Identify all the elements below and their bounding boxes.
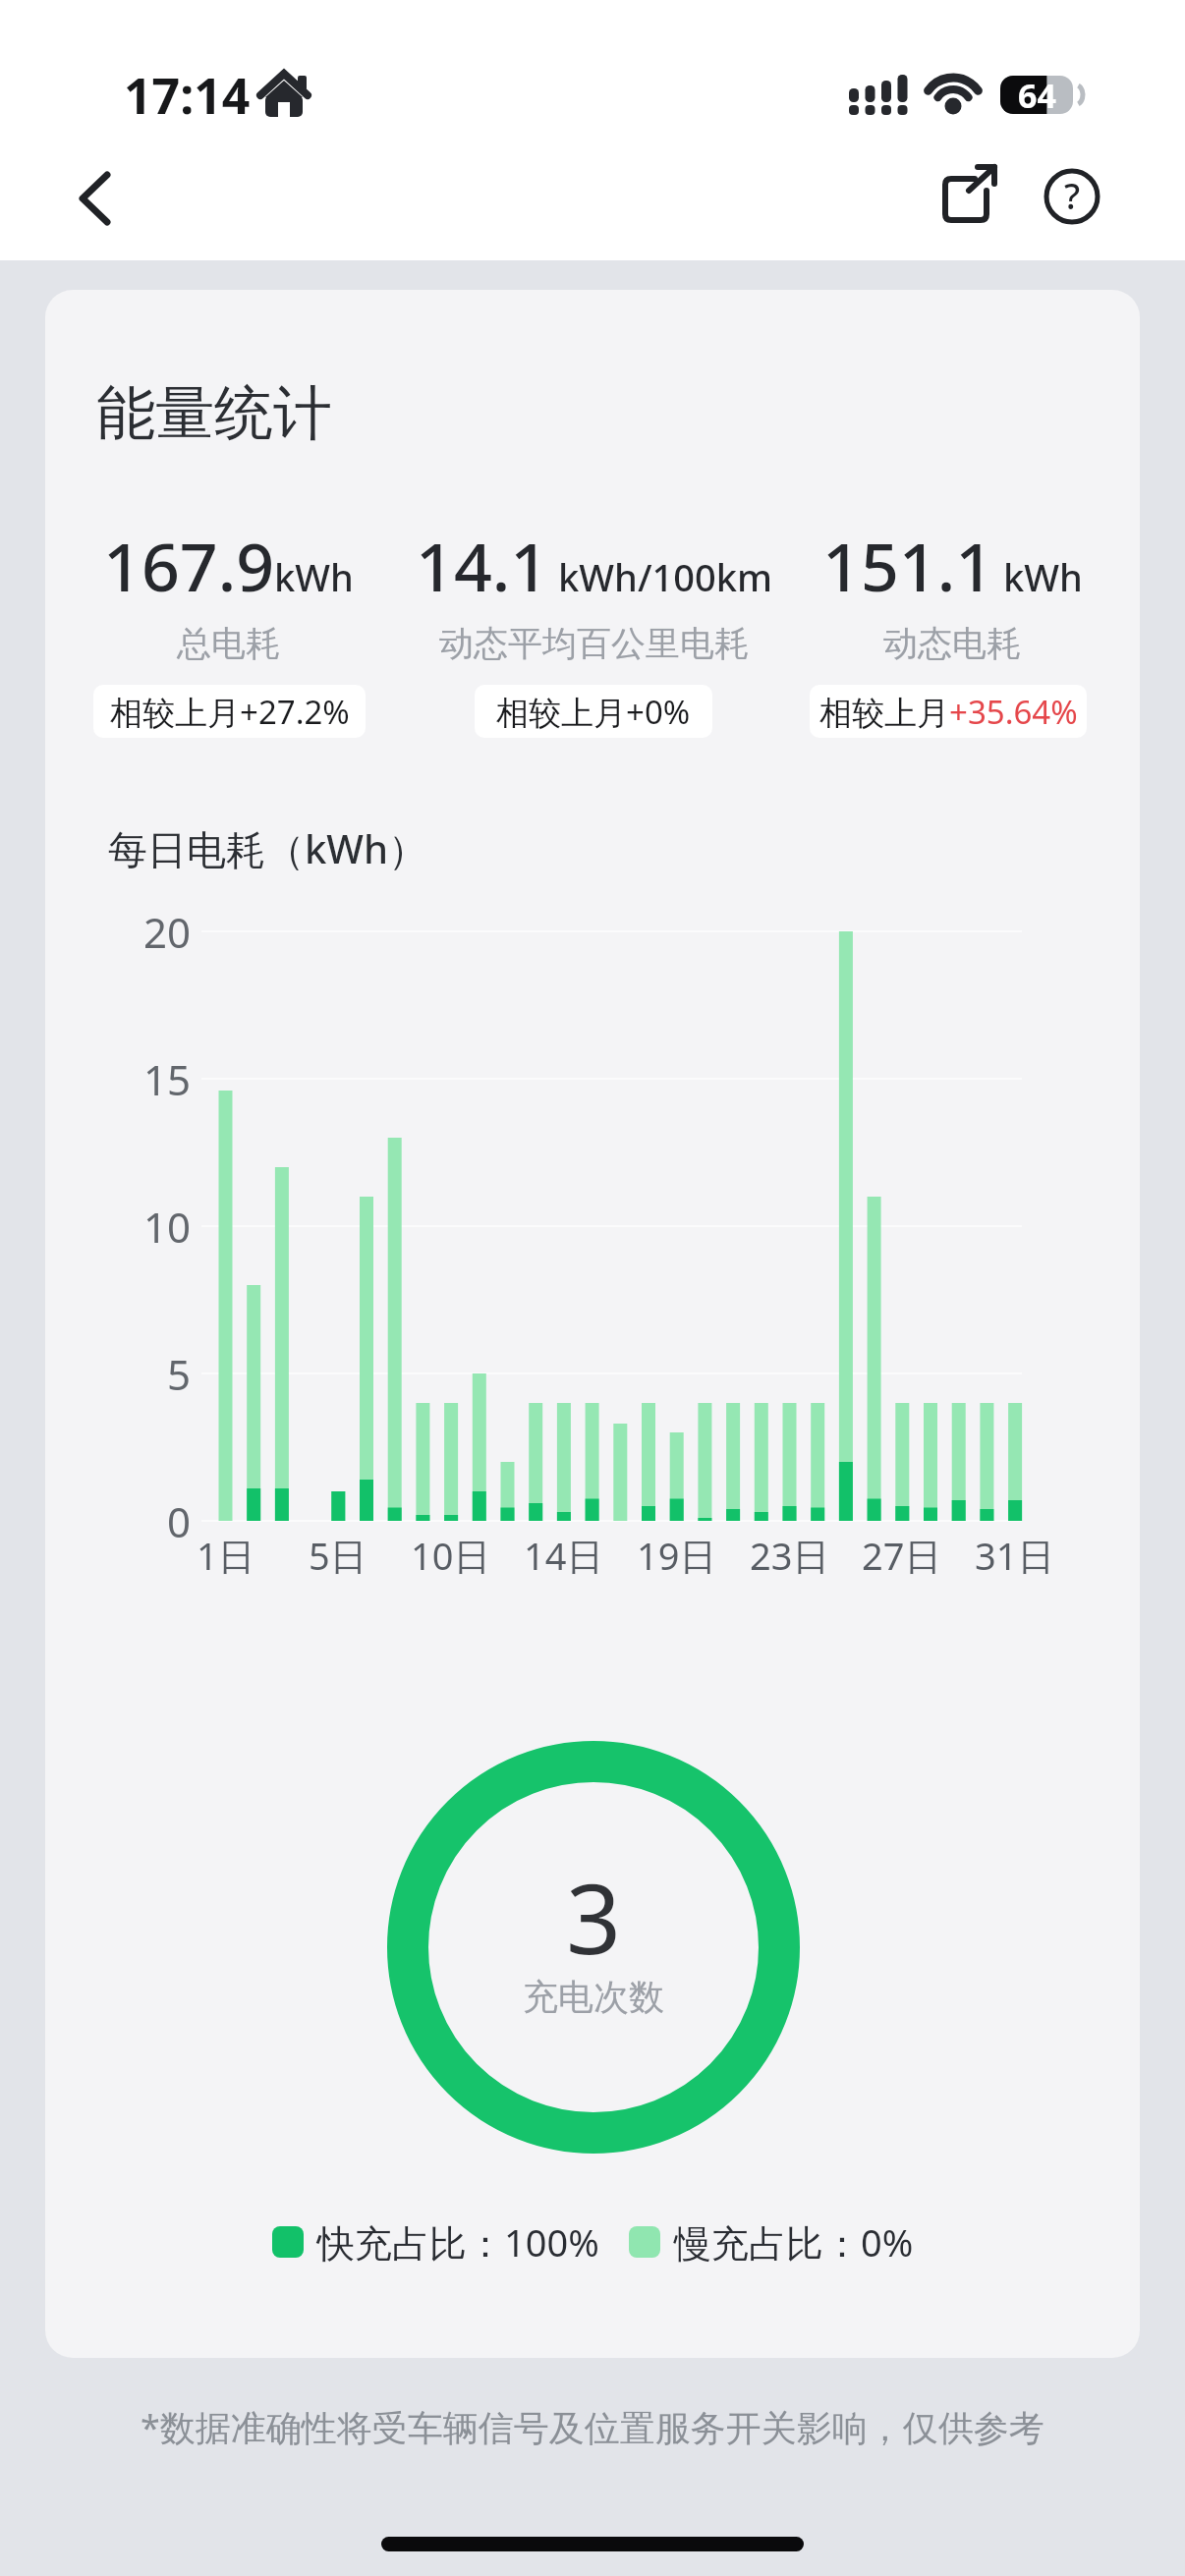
staticText: 每日电耗（kWh）: [108, 821, 428, 875]
staticText: 3: [566, 1851, 622, 1982]
staticText: *数据准确性将受车辆信号及位置服务开关影响，仅供参考: [141, 2403, 1044, 2451]
staticText: 5日: [309, 1530, 367, 1581]
staticText: 14日: [524, 1530, 604, 1581]
staticText: 19日: [637, 1530, 717, 1581]
staticText: 10: [143, 1199, 192, 1255]
staticText: 27日: [862, 1530, 942, 1581]
staticText: 20: [143, 904, 192, 960]
staticText: 10日: [411, 1530, 491, 1581]
staticText: 慢充占比：0%: [674, 2216, 914, 2268]
staticText: 23日: [750, 1530, 830, 1581]
staticText: 充电次数: [523, 1975, 664, 2019]
staticText: 15: [143, 1051, 192, 1107]
staticText: 31日: [975, 1530, 1055, 1581]
staticText: 1日: [197, 1530, 255, 1581]
staticText: 14.1 kWh/100km: [416, 520, 772, 611]
staticText: 动态电耗: [883, 622, 1021, 665]
staticText: 151.1 kWh: [822, 520, 1083, 611]
staticText: 能量统计: [96, 376, 332, 451]
button[interactable]: [59, 167, 122, 230]
button[interactable]: ?: [1041, 165, 1103, 228]
staticText: 相较上月+27.2%: [110, 690, 350, 734]
button[interactable]: [933, 161, 1008, 232]
staticText: ?: [1064, 172, 1081, 220]
staticText: 相较上月+35.64%: [819, 690, 1078, 734]
staticText: 167.9kWh: [103, 520, 354, 611]
staticText: 快充占比：100%: [317, 2216, 599, 2268]
staticText: 动态平均百公里电耗: [439, 622, 749, 665]
staticText: 17:14: [124, 62, 251, 129]
staticText: 总电耗: [177, 622, 280, 665]
staticText: 5: [167, 1346, 192, 1402]
staticText: 64: [1018, 73, 1056, 118]
staticText: 相较上月+0%: [496, 690, 691, 734]
staticText: 0: [167, 1493, 192, 1549]
